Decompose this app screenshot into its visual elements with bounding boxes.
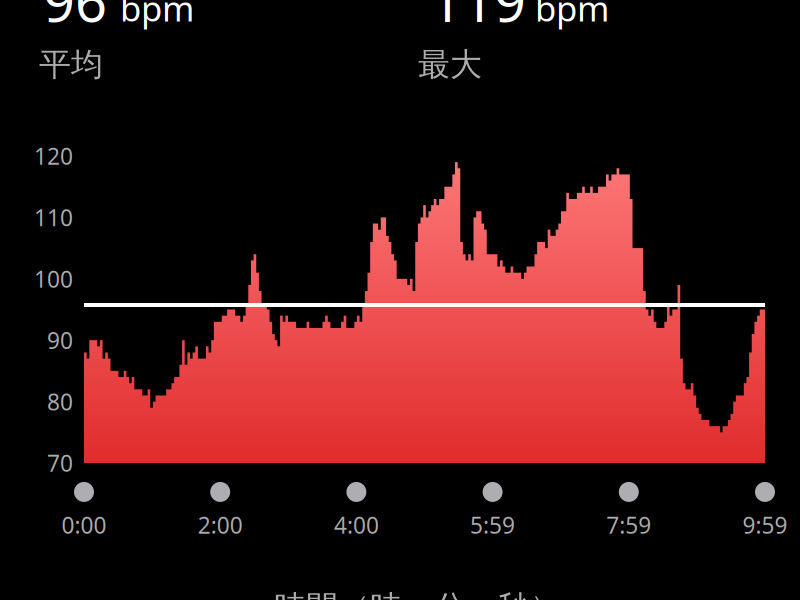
staticText: 0:00	[61, 510, 106, 540]
button[interactable]: 7:59	[559, 470, 699, 524]
button[interactable]: 9:59	[695, 470, 800, 524]
button[interactable]: 5:59	[423, 470, 563, 524]
staticText: 70	[47, 448, 73, 478]
staticText: 110	[34, 202, 73, 232]
staticText: 119	[430, 0, 526, 37]
staticText: 7:59	[606, 510, 651, 540]
staticText: 4:00	[334, 510, 379, 540]
staticText: 平均	[39, 45, 103, 84]
staticText: bpm	[120, 0, 194, 31]
button[interactable]: 4:00	[286, 470, 426, 524]
button[interactable]: 96	[45, 0, 375, 86]
staticText: 100	[34, 264, 73, 294]
staticText: 80	[47, 387, 73, 417]
staticText: bpm	[535, 0, 609, 31]
staticText: 120	[34, 141, 73, 171]
staticText: 9:59	[742, 510, 787, 540]
staticText: 90	[47, 325, 73, 355]
staticText: 96	[43, 0, 107, 37]
button[interactable]: 119	[432, 0, 762, 86]
staticText: 時間（時：分：秒）	[274, 588, 562, 600]
staticText: 最大	[418, 45, 482, 84]
staticText: 2:00	[198, 510, 243, 540]
staticText: 5:59	[470, 510, 515, 540]
button[interactable]: 0:00	[14, 470, 154, 524]
button[interactable]: 2:00	[150, 470, 290, 524]
